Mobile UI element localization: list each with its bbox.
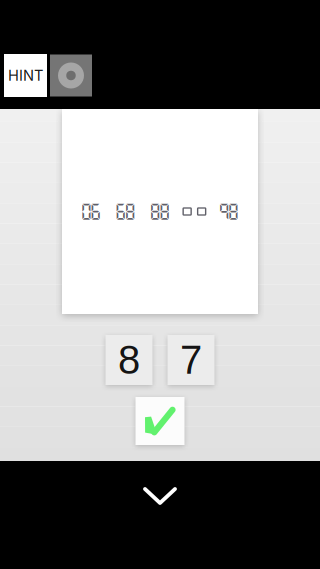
button[interactable]: 7 xyxy=(167,335,214,385)
button[interactable]: Sound xyxy=(50,54,92,96)
staticText: 88 xyxy=(149,201,171,222)
button[interactable]: Check answer xyxy=(135,397,184,445)
staticText: 98 xyxy=(218,201,240,222)
staticText: 68 xyxy=(114,201,137,222)
staticText: 06 xyxy=(80,201,102,222)
button[interactable]: Collapse xyxy=(0,461,320,569)
staticText: HINT xyxy=(8,67,43,84)
staticText: 8 xyxy=(118,338,140,382)
staticText: 7 xyxy=(180,338,202,382)
button[interactable]: HINT xyxy=(4,54,47,97)
button[interactable]: 8 xyxy=(105,335,152,385)
